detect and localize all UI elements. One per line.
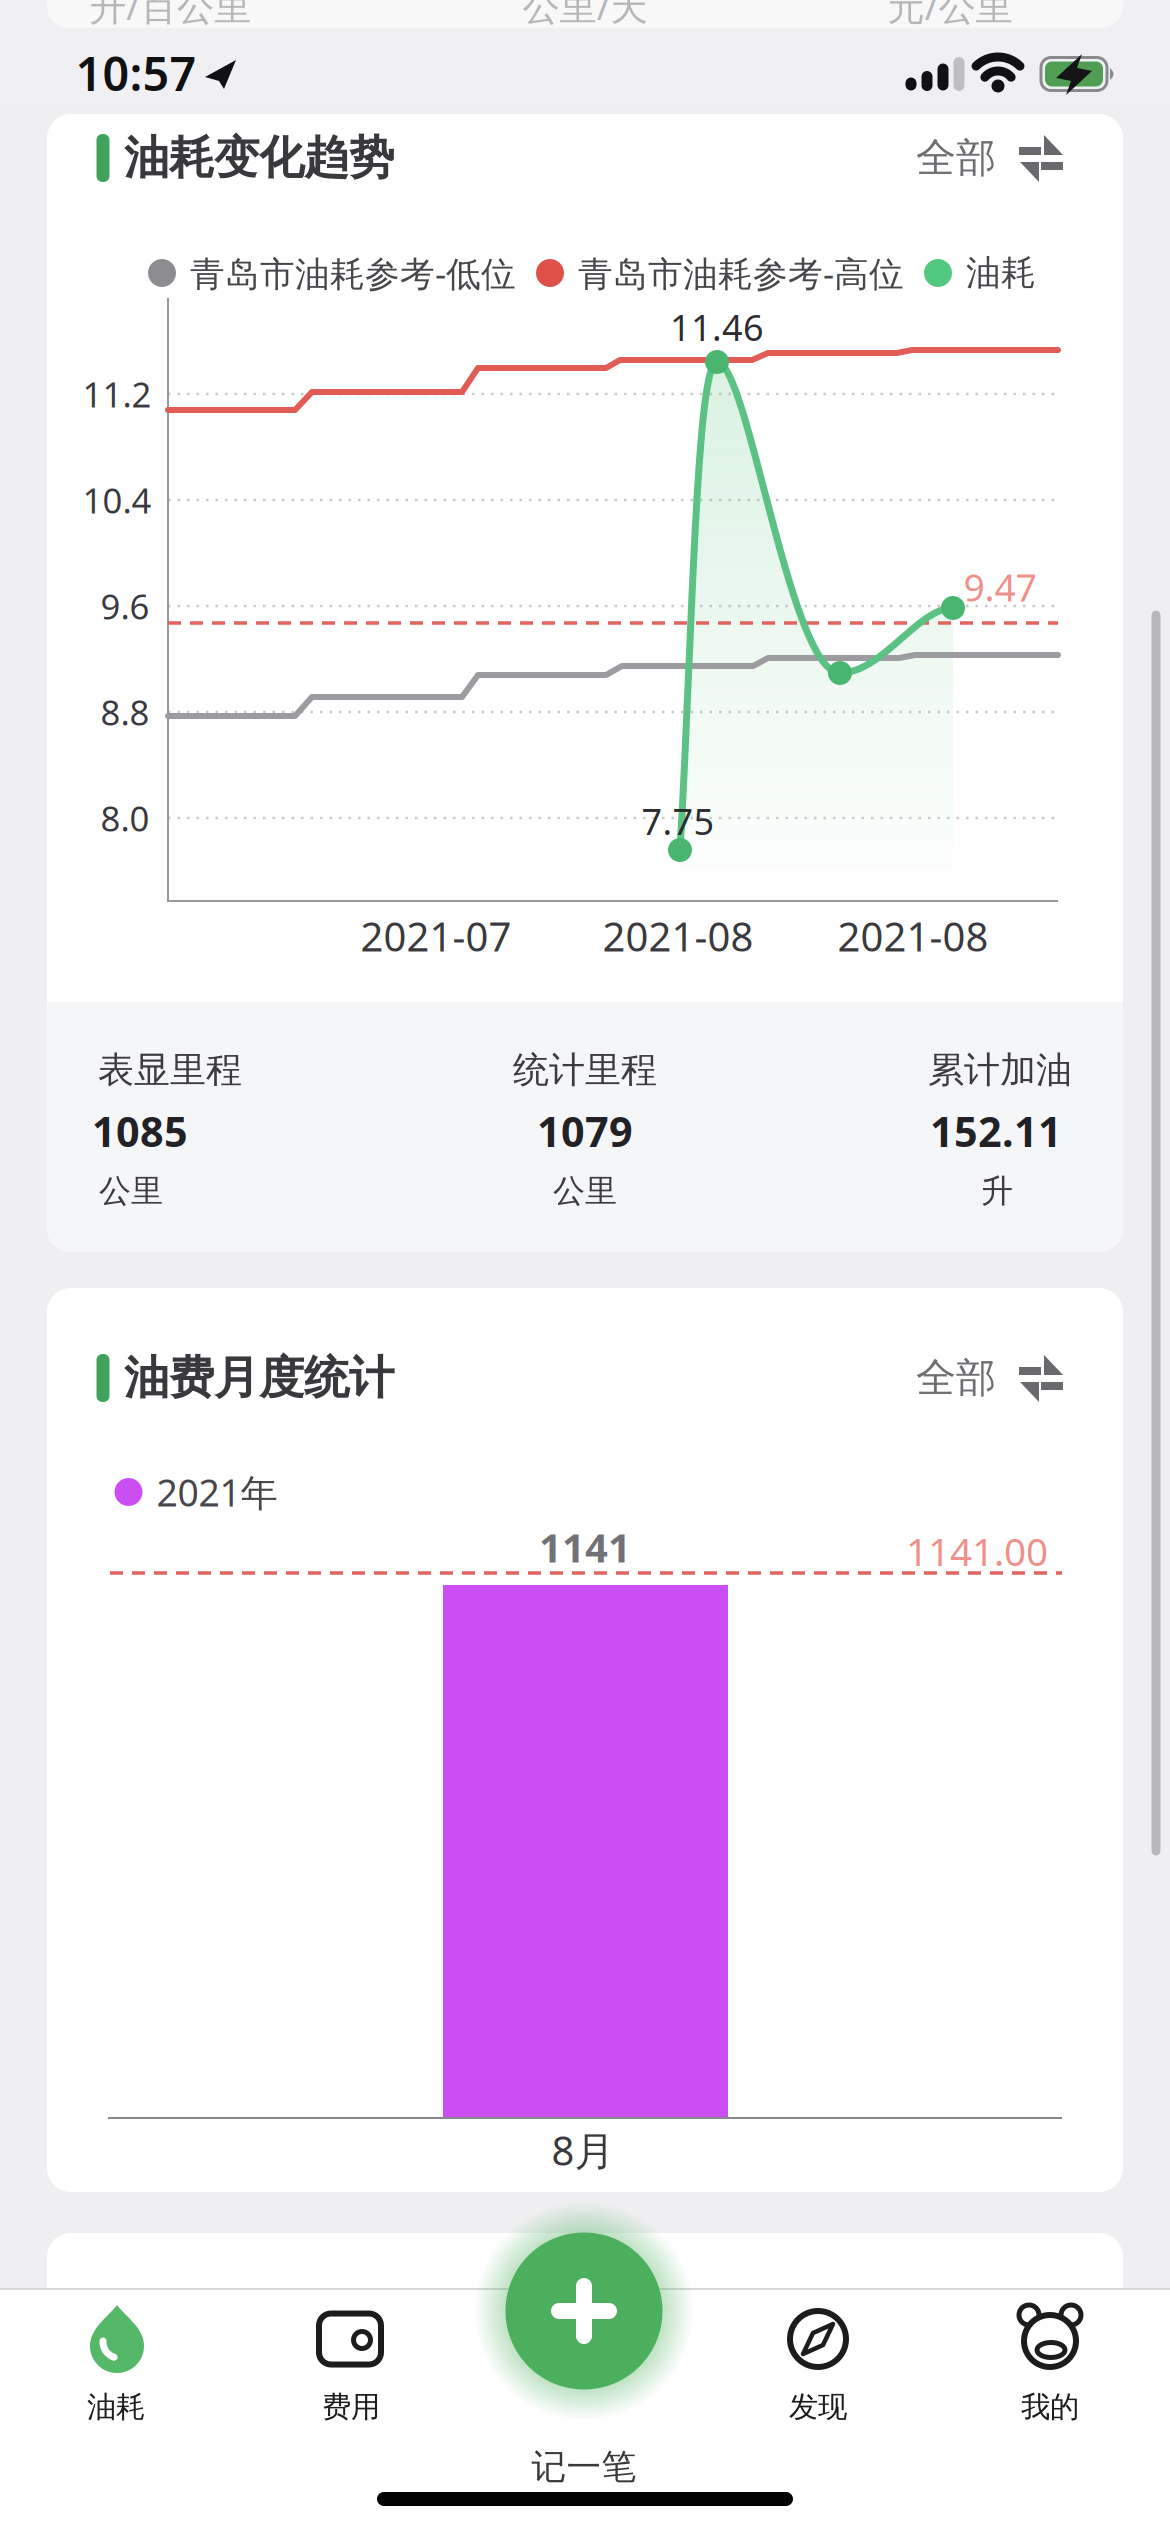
button[interactable]: 我的 [975, 2298, 1125, 2428]
staticText: 油耗变化趋势 [124, 130, 394, 186]
staticText: 油耗 [966, 252, 1036, 294]
staticText: 1085 [92, 1104, 188, 1158]
button[interactable]: 费用 [276, 2298, 426, 2428]
staticText: 发现 [789, 2389, 847, 2425]
button[interactable]: 油耗 [41, 2298, 191, 2428]
staticText: 11.46 [670, 303, 764, 351]
staticText: 升/百公里 [89, 0, 251, 31]
staticText: 1141 [539, 1520, 631, 1573]
staticText: 油耗 [87, 2389, 145, 2425]
staticText: 累计加油 [928, 1048, 1072, 1092]
staticText: 元/公里 [887, 0, 1012, 31]
staticText: 2021-08 [837, 909, 988, 962]
staticText: 我的 [1021, 2389, 1079, 2425]
staticText: 全部 [916, 133, 996, 182]
staticText: 2021年 [156, 1467, 277, 1517]
staticText: 10.4 [82, 477, 151, 523]
staticText: 记一笔 [531, 2446, 636, 2488]
staticText: 表显里程 [98, 1048, 242, 1092]
staticText: 2021-08 [602, 909, 753, 962]
staticText: 油费月度统计 [124, 1350, 394, 1406]
staticText: 费用 [322, 2389, 380, 2425]
button[interactable]: 记一笔 [504, 2232, 664, 2488]
staticText: 11.2 [82, 371, 151, 417]
button[interactable]: 筛选 全部 [915, 1348, 1065, 1408]
staticText: 7.75 [641, 797, 714, 845]
staticText: 统计里程 [513, 1048, 657, 1092]
staticText: 152.11 [930, 1104, 1062, 1158]
staticText: 公里/天 [522, 0, 647, 31]
staticText: 升 [981, 1171, 1013, 1211]
staticText: 10:57 [75, 42, 196, 104]
staticText: 9.6 [100, 583, 149, 629]
staticText: 8.0 [100, 795, 149, 841]
staticText: 青岛市油耗参考-低位 [190, 250, 516, 296]
button[interactable]: 筛选 全部 [915, 128, 1065, 188]
staticText: 9.47 [963, 562, 1036, 612]
staticText: 8月 [551, 2123, 614, 2176]
staticText: 青岛市油耗参考-高位 [578, 250, 904, 296]
button[interactable]: 发现 [743, 2298, 893, 2428]
staticText: 1079 [537, 1104, 633, 1158]
staticText: 全部 [916, 1353, 996, 1402]
staticText: 1141.00 [906, 1525, 1048, 1577]
staticText: 8.8 [100, 689, 149, 735]
staticText: 2021-07 [360, 909, 511, 962]
staticText: 公里 [553, 1171, 617, 1211]
staticText: 公里 [99, 1171, 163, 1211]
